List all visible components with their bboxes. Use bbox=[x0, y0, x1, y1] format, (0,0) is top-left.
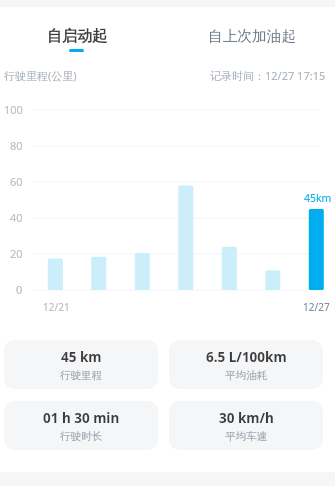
staticText: 自启动起 bbox=[47, 27, 107, 46]
staticText: 80 bbox=[10, 138, 23, 153]
staticText: 行驶时长 bbox=[60, 430, 103, 443]
staticText: 平均车速 bbox=[225, 430, 268, 443]
button[interactable]: 自上次加油起 bbox=[177, 22, 327, 54]
staticText: 100 bbox=[4, 102, 23, 117]
button[interactable]: 自启动起 bbox=[2, 22, 152, 54]
staticText: 45 km bbox=[61, 348, 102, 366]
staticText: 30 km/h bbox=[219, 409, 274, 427]
staticText: 6.5 L/100km bbox=[206, 348, 287, 366]
staticText: 20 bbox=[10, 246, 23, 261]
button[interactable]: 6.5 L/100km bbox=[169, 340, 323, 389]
staticText: 0 bbox=[16, 282, 23, 297]
staticText: 行驶里程(公里) bbox=[4, 68, 77, 83]
staticText: 01 h 30 min bbox=[43, 409, 120, 427]
staticText: 平均油耗 bbox=[225, 369, 268, 382]
button[interactable]: 30 km/h bbox=[169, 401, 323, 450]
staticText: 行驶里程 bbox=[60, 369, 103, 382]
other: 行驶里程柱状图 bbox=[0, 0, 335, 486]
staticText: 12/27 bbox=[303, 300, 330, 314]
button[interactable]: 01 h 30 min bbox=[4, 401, 158, 450]
staticText: 记录时间：12/27 17:15 bbox=[210, 68, 326, 83]
staticText: 45km bbox=[304, 191, 332, 205]
staticText: 60 bbox=[10, 174, 23, 189]
button[interactable]: 45 km bbox=[4, 340, 158, 389]
staticText: 40 bbox=[10, 210, 23, 225]
staticText: 12/21 bbox=[43, 300, 70, 314]
staticText: 自上次加油起 bbox=[208, 27, 297, 46]
